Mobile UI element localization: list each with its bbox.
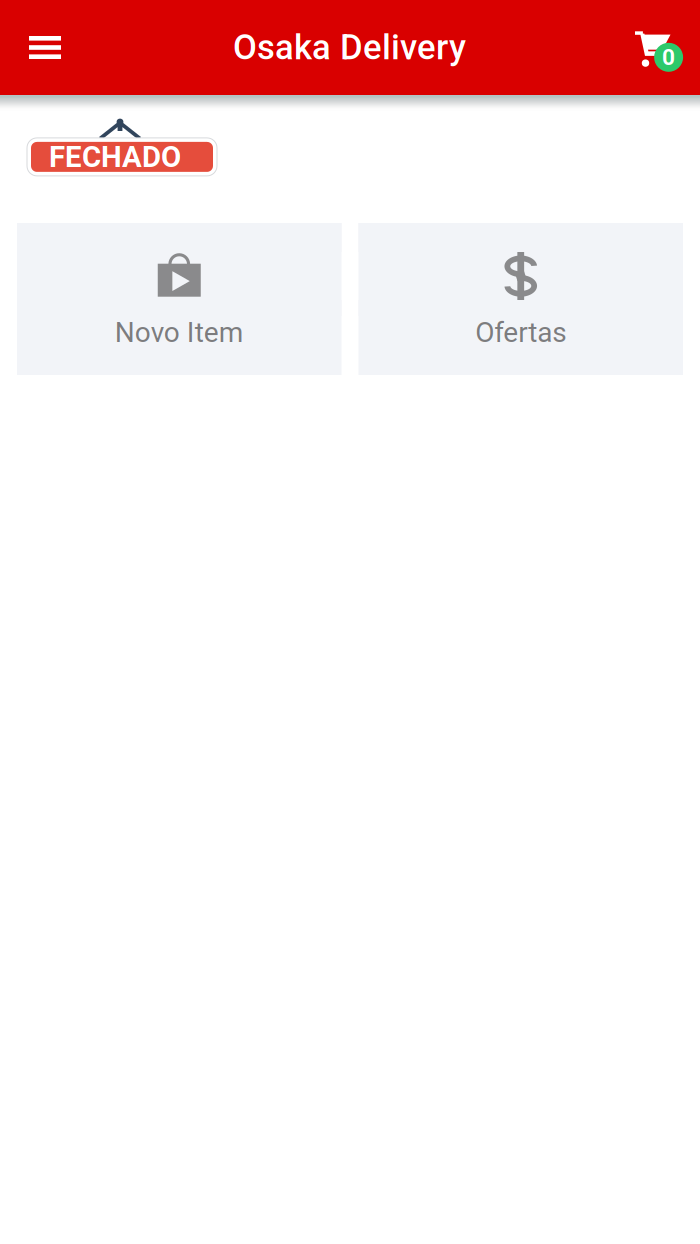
button[interactable]: Menu bbox=[0, 0, 84, 94]
staticText: Ofertas bbox=[475, 316, 566, 349]
button[interactable]: Cart bbox=[615, 0, 700, 95]
staticText: Osaka Delivery bbox=[233, 27, 466, 68]
staticText: Novo Item bbox=[115, 316, 244, 349]
button[interactable]: Ofertas bbox=[358, 223, 683, 375]
staticText: 0 bbox=[662, 44, 675, 71]
button[interactable]: Novo Item bbox=[17, 223, 341, 375]
staticText: FECHADO bbox=[49, 140, 181, 174]
